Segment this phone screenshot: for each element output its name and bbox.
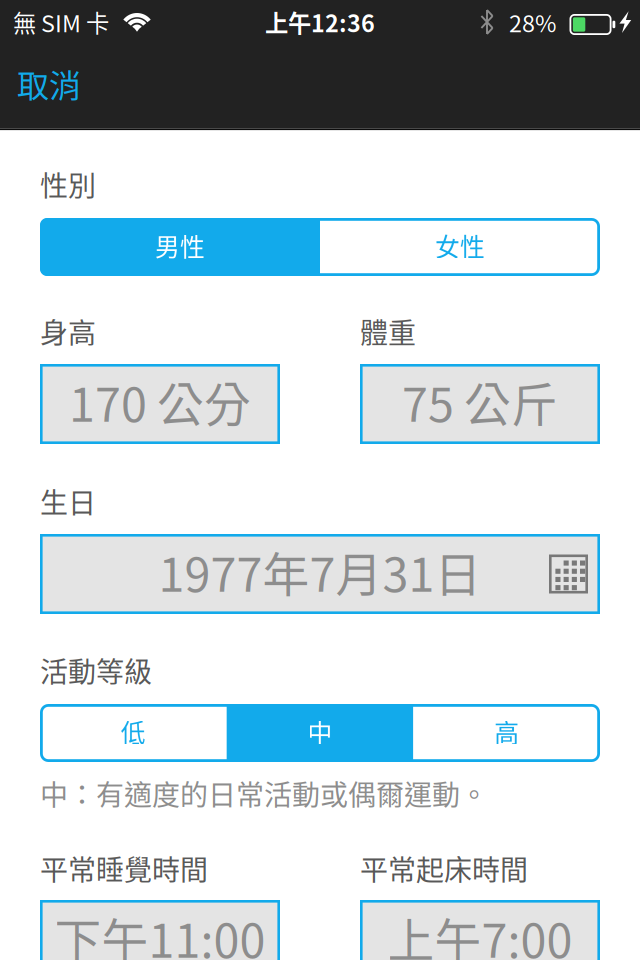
staticText: 中	[307, 713, 332, 749]
staticText: 取消	[17, 60, 81, 107]
staticText: 中：有適度的日常活動或偶爾運動。	[40, 773, 488, 814]
staticText: 活動等級	[40, 650, 152, 691]
button[interactable]: 下午11:00	[40, 900, 280, 960]
staticText: 上午12:36	[265, 5, 375, 39]
button[interactable]: 75 公斤	[360, 364, 600, 444]
staticText: 體重	[360, 311, 416, 352]
staticText: 男性	[155, 227, 205, 263]
staticText: 低	[121, 713, 146, 749]
staticText: 性別	[40, 164, 96, 205]
button[interactable]: 女性	[320, 218, 600, 276]
staticText: 1977年7月31日	[158, 538, 481, 605]
staticText: 上午7:00	[387, 904, 572, 960]
button[interactable]: 170 公分	[40, 364, 280, 444]
staticText: 身高	[40, 311, 96, 352]
staticText: 28%	[509, 5, 556, 39]
staticText: 平常起床時間	[360, 848, 528, 889]
staticText: 平常睡覺時間	[40, 848, 208, 889]
button[interactable]: 低	[40, 704, 227, 762]
staticText: 下午11:00	[54, 904, 265, 960]
staticText: 170 公分	[69, 368, 251, 435]
button[interactable]: 取消	[0, 59, 109, 109]
staticText: 生日	[40, 481, 96, 522]
button[interactable]: 高	[413, 704, 600, 762]
button[interactable]: 1977年7月31日	[40, 534, 600, 614]
staticText: 高	[494, 713, 519, 749]
staticText: 無 SIM 卡	[13, 5, 109, 39]
button[interactable]: 上午7:00	[360, 900, 600, 960]
button[interactable]: 中	[227, 704, 413, 762]
staticText: 75 公斤	[402, 368, 558, 435]
staticText: 女性	[435, 227, 485, 263]
button[interactable]: 男性	[40, 218, 320, 276]
